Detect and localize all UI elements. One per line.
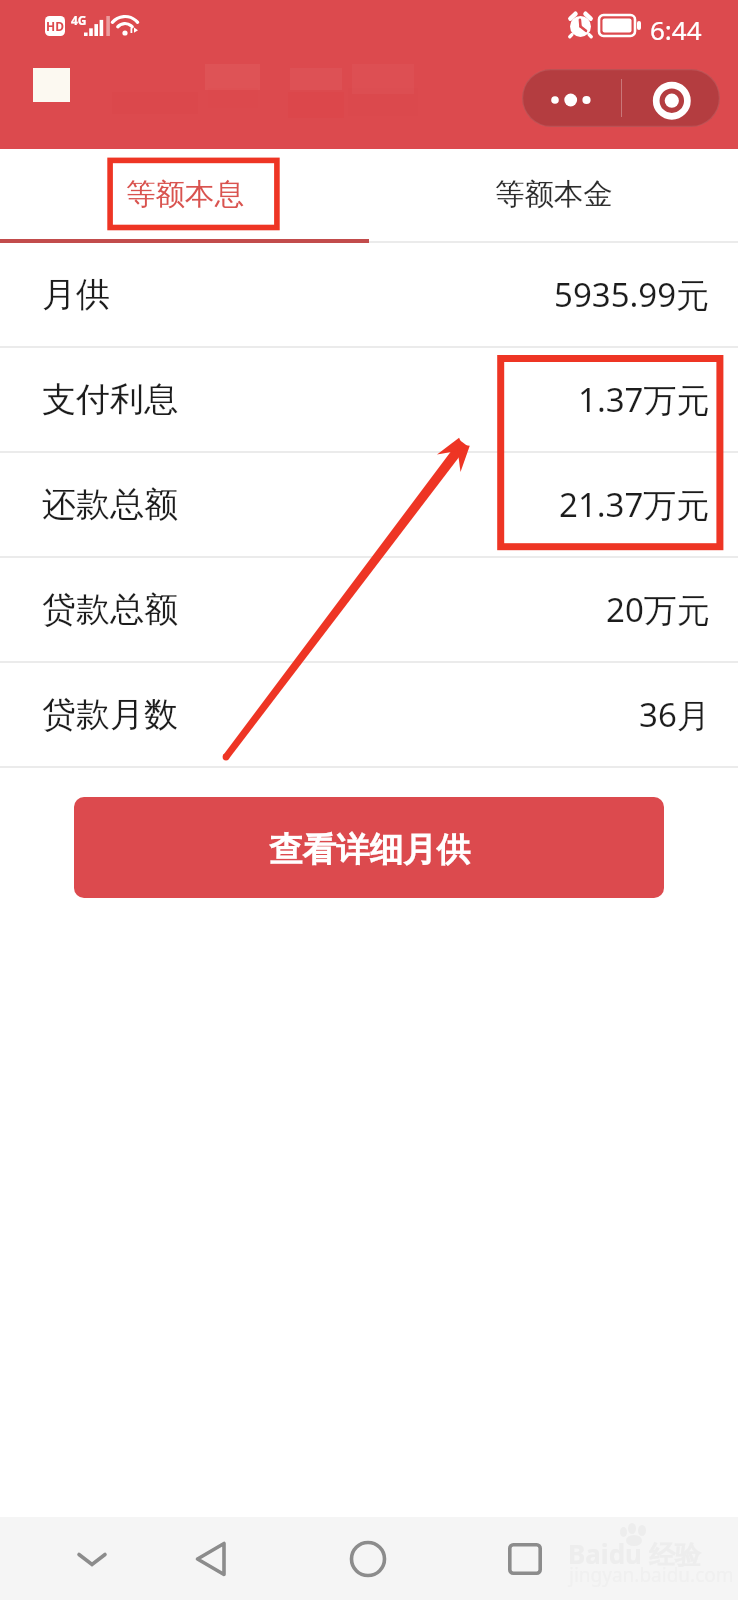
staticText: 6:44	[650, 12, 702, 47]
button[interactable]: 还款总额	[0, 453, 738, 556]
staticText: 查看详细月供	[269, 829, 470, 871]
button[interactable]: More options	[522, 69, 621, 127]
button[interactable]: Home	[328, 1517, 408, 1600]
button[interactable]: 查看详细月供	[74, 797, 664, 898]
button[interactable]: Recent apps	[485, 1517, 565, 1600]
staticText: 贷款月数	[42, 693, 178, 736]
button[interactable]: Hide keyboard	[52, 1517, 132, 1600]
staticText: HD	[46, 18, 64, 34]
staticText: 还款总额	[42, 483, 178, 526]
button[interactable]: Back	[171, 1517, 251, 1600]
staticText: 1.37万元	[578, 377, 710, 422]
staticText: 支付利息	[42, 378, 178, 421]
staticText: 4G	[71, 12, 87, 28]
button[interactable]: 贷款月数	[0, 663, 738, 766]
button[interactable]: Close mini program	[622, 69, 720, 127]
staticText: 贷款总额	[42, 588, 178, 631]
button[interactable]: 等额本金	[369, 149, 738, 239]
staticText: 月供	[42, 273, 110, 316]
button[interactable]: 月供	[0, 243, 738, 346]
staticText: 21.37万元	[559, 482, 710, 527]
button[interactable]: 等额本息	[0, 149, 369, 239]
staticText: 等额本金	[495, 176, 613, 213]
button[interactable]: 支付利息	[0, 348, 738, 451]
staticText: 5935.99元	[554, 272, 710, 317]
staticText: Baidu 经验	[568, 1536, 701, 1572]
staticText: 等额本息	[126, 176, 244, 213]
staticText: 20万元	[606, 587, 710, 632]
button[interactable]: 贷款总额	[0, 558, 738, 661]
staticText: 36月	[639, 692, 710, 737]
